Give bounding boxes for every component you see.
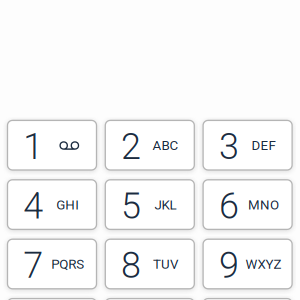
staticText: 4	[23, 185, 43, 227]
button[interactable]: 9 WXYZ	[203, 239, 292, 289]
staticText: 2	[121, 126, 141, 168]
button[interactable]: 2 ABC	[105, 120, 194, 170]
staticText: 1	[23, 126, 43, 168]
staticText: TUV	[153, 256, 178, 272]
staticText: 6	[219, 185, 239, 227]
staticText: MNO	[248, 197, 279, 213]
button[interactable]: 5 JKL	[105, 180, 194, 229]
button[interactable]: 1 Voicemail	[7, 120, 96, 170]
staticText: WXYZ	[245, 256, 281, 272]
button[interactable]: 3 DEF	[203, 120, 292, 170]
button[interactable]: 0 plus	[105, 299, 194, 300]
button[interactable]: 8 TUV	[105, 239, 194, 289]
staticText: GHI	[56, 197, 79, 213]
staticText: 8	[121, 244, 141, 287]
staticText: 3	[219, 126, 239, 168]
button[interactable]: 6 MNO	[203, 180, 292, 229]
staticText: 7	[23, 244, 43, 287]
staticText: PQRS	[51, 256, 84, 272]
button[interactable]: Pound	[203, 299, 292, 300]
button[interactable]: Star	[7, 299, 96, 300]
button[interactable]: 7 PQRS	[7, 239, 96, 289]
button[interactable]: 4 GHI	[7, 180, 96, 229]
staticText: DEF	[251, 138, 275, 153]
staticText: ABC	[153, 138, 179, 153]
staticText: 5	[121, 185, 141, 227]
staticText: JKL	[155, 197, 177, 213]
staticText: 9	[219, 244, 239, 287]
